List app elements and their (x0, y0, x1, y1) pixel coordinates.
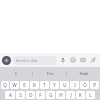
staticText: I (74, 82, 76, 88)
staticText: S (19, 92, 22, 98)
button[interactable]: P (90, 81, 99, 89)
button[interactable]: GIF (79, 56, 87, 64)
button[interactable]: F (36, 91, 45, 99)
staticText: R (33, 82, 36, 88)
button[interactable]: J (66, 91, 75, 99)
button[interactable]: T (40, 81, 49, 89)
button[interactable]: Voice note (59, 56, 67, 64)
button[interactable]: I (70, 81, 79, 89)
button[interactable]: Q (1, 81, 9, 89)
staticText: L (89, 92, 92, 98)
staticText: I (15, 71, 17, 76)
button[interactable]: S (16, 91, 25, 99)
staticText: E (23, 82, 26, 88)
button[interactable]: D (26, 91, 35, 99)
staticText: Q (3, 82, 7, 88)
staticText: O (83, 82, 87, 88)
staticText: K (79, 92, 82, 98)
staticText: J (70, 92, 72, 98)
staticText: Y (53, 82, 56, 88)
staticText: H (59, 92, 63, 98)
button[interactable]: I (0, 67, 32, 80)
button[interactable]: A (5, 91, 15, 99)
staticText: D (29, 92, 33, 98)
button[interactable]: I'm (33, 67, 66, 80)
button[interactable]: K (76, 91, 85, 99)
button[interactable]: Y (50, 81, 59, 89)
button[interactable]: Send a chat (16, 56, 54, 65)
staticText: T (43, 82, 46, 88)
staticText: F (39, 92, 42, 98)
staticText: I'm (47, 71, 53, 76)
staticText: Send a chat (16, 58, 38, 63)
staticText: U (63, 82, 67, 88)
staticText: W (12, 82, 17, 88)
button[interactable]: Stickers (69, 56, 77, 64)
staticText: P (93, 82, 96, 88)
button[interactable]: Camera (2, 56, 11, 65)
button[interactable]: O (80, 81, 89, 89)
button[interactable]: L (86, 91, 95, 99)
button[interactable]: Yeah (67, 67, 100, 80)
button[interactable]: G (46, 91, 55, 99)
button[interactable]: Send (89, 56, 97, 64)
staticText: Yeah (79, 71, 89, 76)
button[interactable]: H (56, 91, 65, 99)
button[interactable]: E (20, 81, 29, 89)
button[interactable]: W (10, 81, 19, 89)
staticText: G (49, 92, 53, 98)
staticText: A (9, 92, 12, 98)
button[interactable]: U (60, 81, 69, 89)
button[interactable]: R (30, 81, 39, 89)
